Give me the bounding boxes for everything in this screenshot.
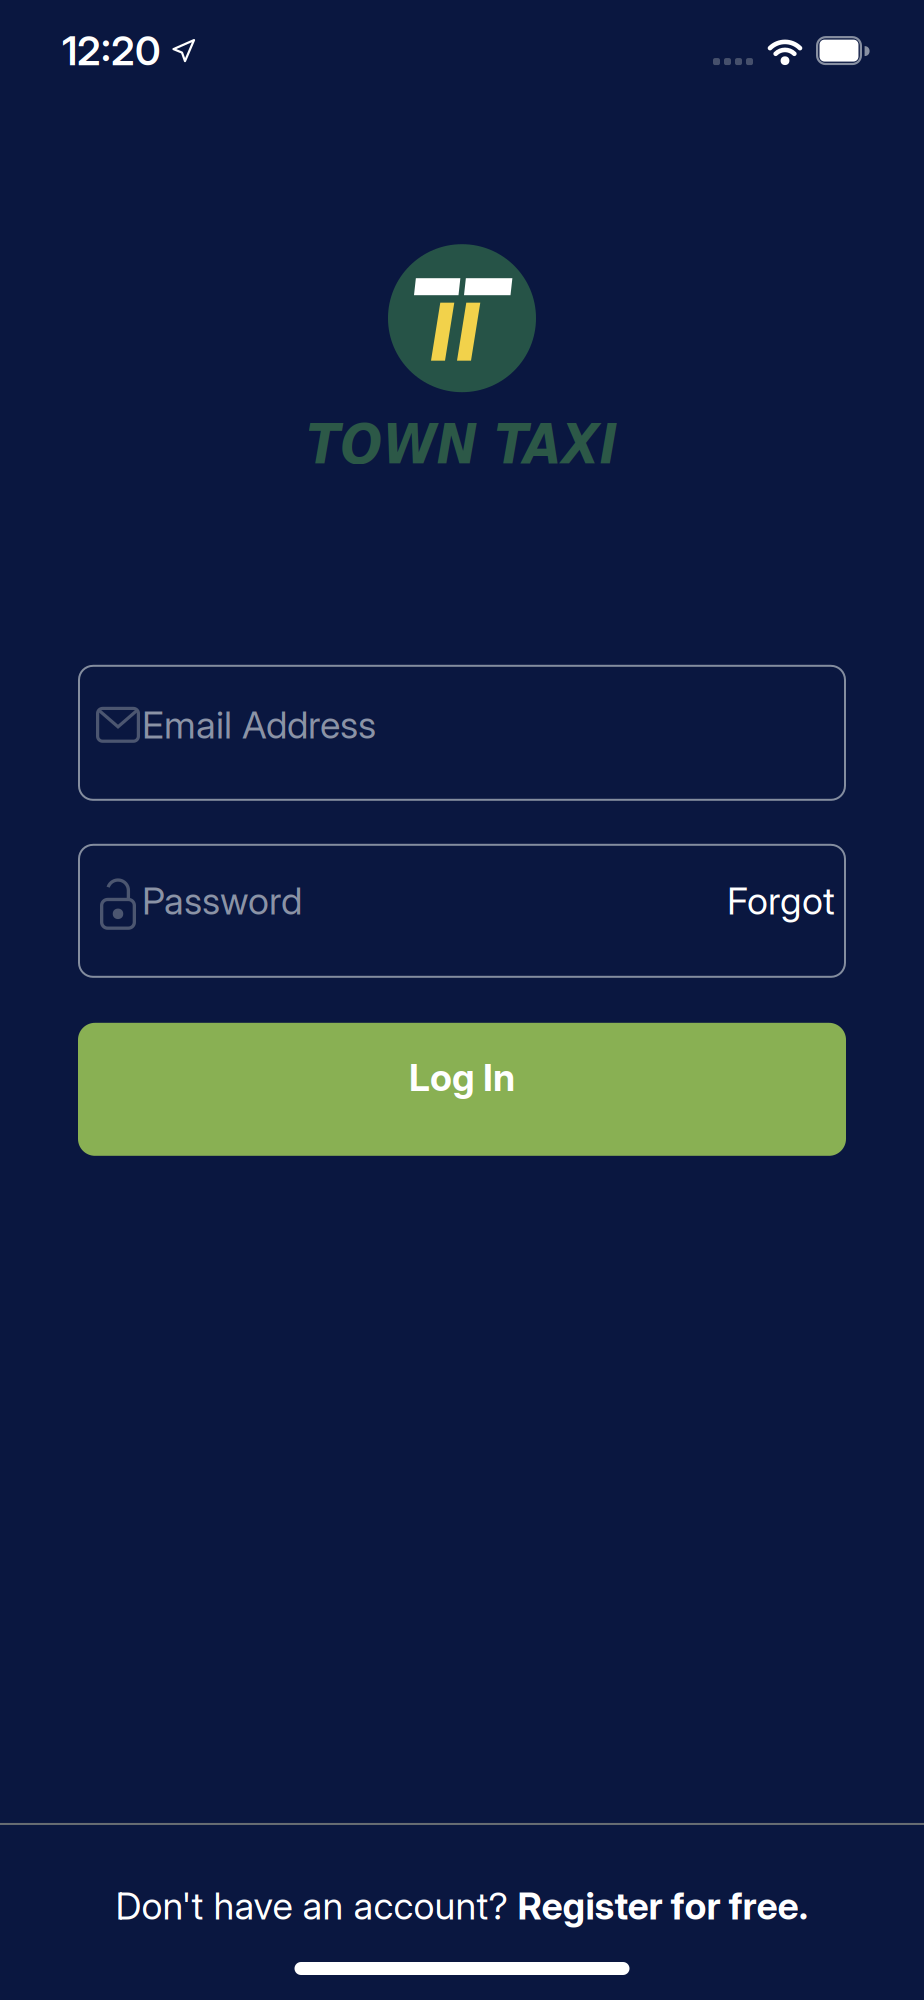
button[interactable]: Password	[78, 844, 846, 978]
button[interactable]: Don't have an account? Register for free…	[115, 1884, 808, 1928]
staticText: Don't have an account? Register for free…	[115, 1884, 808, 1928]
staticText: Password	[142, 879, 302, 923]
staticText: Forgot	[727, 879, 835, 923]
staticText: Log In	[409, 1055, 515, 1099]
staticText: 12:20	[62, 27, 161, 74]
button[interactable]: Email Address	[78, 665, 846, 801]
staticText: Email Address	[142, 703, 376, 747]
button[interactable]: Forgot	[727, 879, 835, 923]
staticText: TOWN TAXI	[306, 412, 617, 476]
button[interactable]: Log In	[78, 1023, 846, 1156]
